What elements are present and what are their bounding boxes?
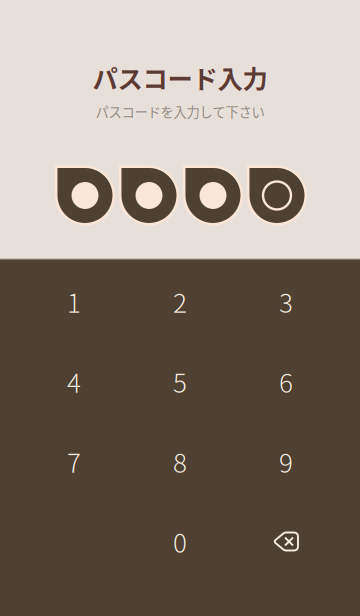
button[interactable]: 6 xyxy=(233,341,339,421)
button[interactable]: Delete xyxy=(233,501,339,581)
staticText: パスコードを入力して下さい xyxy=(95,102,264,121)
staticText: 1 xyxy=(67,283,81,320)
staticText: 9 xyxy=(279,443,293,480)
staticText: 8 xyxy=(173,443,187,480)
button[interactable]: 4 xyxy=(21,341,127,421)
staticText: 6 xyxy=(279,363,293,400)
button[interactable]: 3 xyxy=(233,261,339,341)
staticText: 3 xyxy=(279,283,293,320)
staticText: パスコード入力 xyxy=(92,59,267,96)
staticText: 4 xyxy=(67,363,81,400)
button[interactable]: 0 xyxy=(127,501,233,581)
staticText: 2 xyxy=(173,283,187,320)
button[interactable]: 8 xyxy=(127,421,233,501)
button[interactable]: 5 xyxy=(127,341,233,421)
button[interactable]: 1 xyxy=(21,261,127,341)
staticText: 7 xyxy=(67,443,81,480)
staticText: 0 xyxy=(173,523,187,560)
staticText: 5 xyxy=(173,363,187,400)
button[interactable]: 2 xyxy=(127,261,233,341)
button[interactable]: 7 xyxy=(21,421,127,501)
button[interactable]: 9 xyxy=(233,421,339,501)
